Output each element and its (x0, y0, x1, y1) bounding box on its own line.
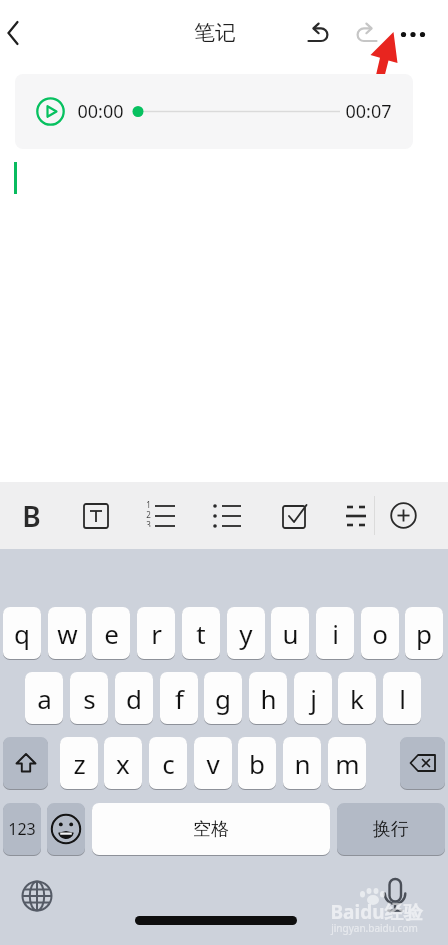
button[interactable]: 换行 (337, 803, 445, 855)
staticText: e (104, 616, 119, 651)
staticText: a (37, 681, 52, 716)
button[interactable]: z (60, 737, 98, 789)
button[interactable] (2, 18, 32, 48)
button[interactable]: m (328, 737, 366, 789)
button[interactable]: g (204, 672, 242, 724)
staticText: s (83, 681, 96, 716)
button[interactable] (212, 482, 242, 549)
button[interactable]: u (271, 607, 309, 659)
staticText: z (73, 746, 86, 781)
button[interactable] (388, 482, 418, 549)
button[interactable]: b (238, 737, 276, 789)
staticText: Baidu经验 (330, 899, 423, 925)
button[interactable]: j (294, 672, 332, 724)
button[interactable]: q (3, 607, 41, 659)
staticText: w (57, 616, 78, 651)
staticText: 1 (146, 499, 151, 510)
staticText: 00:07 (345, 99, 392, 124)
button[interactable] (306, 20, 332, 46)
button[interactable] (382, 870, 408, 912)
button[interactable]: y (227, 607, 265, 659)
staticText: k (350, 681, 364, 716)
button[interactable] (47, 803, 85, 855)
staticText: g (215, 681, 231, 716)
staticText: n (294, 746, 311, 781)
staticText: 空格 (193, 818, 229, 841)
button[interactable]: e (92, 607, 130, 659)
button[interactable]: d (115, 672, 153, 724)
staticText: l (399, 681, 406, 716)
button[interactable]: 123 (3, 803, 41, 855)
staticText: 3 (146, 519, 151, 527)
button[interactable]: c (149, 737, 187, 789)
button[interactable] (82, 482, 110, 549)
staticText: c (162, 746, 175, 781)
staticText: 123 (8, 818, 36, 840)
button[interactable]: h (249, 672, 287, 724)
staticText: r (151, 616, 162, 651)
button[interactable]: l (383, 672, 421, 724)
button[interactable]: k (338, 672, 376, 724)
staticText: m (335, 746, 360, 781)
button[interactable] (342, 482, 372, 549)
button[interactable]: n (283, 737, 321, 789)
button[interactable]: v (194, 737, 232, 789)
staticText: y (239, 616, 253, 651)
staticText: v (206, 746, 220, 781)
staticText: h (260, 681, 277, 716)
button[interactable] (400, 737, 445, 789)
button[interactable]: w (48, 607, 86, 659)
staticText: 2 (146, 509, 151, 520)
staticText: t (196, 616, 206, 651)
staticText: jingyan.baidu.com (331, 921, 418, 935)
staticText: i (332, 616, 339, 651)
button[interactable]: B (14, 482, 48, 549)
button[interactable]: s (70, 672, 108, 724)
staticText: b (249, 746, 265, 781)
button[interactable]: 00:00 (15, 74, 413, 149)
button[interactable]: 1 (146, 482, 176, 549)
button[interactable]: a (25, 672, 63, 724)
button[interactable]: f (160, 672, 198, 724)
button[interactable]: i (316, 607, 354, 659)
button[interactable] (280, 482, 310, 549)
button[interactable] (354, 20, 380, 46)
staticText: 换行 (373, 818, 409, 841)
staticText: f (175, 681, 184, 716)
staticText: 00:00 (77, 99, 124, 124)
button[interactable]: 空格 (92, 803, 330, 855)
staticText: p (416, 616, 432, 651)
staticText: o (372, 616, 388, 651)
staticText: j (310, 681, 317, 716)
staticText: u (282, 616, 299, 651)
staticText: 笔记 (194, 20, 236, 46)
button[interactable]: t (182, 607, 220, 659)
button[interactable]: r (137, 607, 175, 659)
button[interactable]: x (104, 737, 142, 789)
button[interactable] (20, 879, 54, 913)
staticText: B (22, 497, 41, 535)
staticText: x (116, 746, 130, 781)
staticText: d (126, 681, 142, 716)
button[interactable] (3, 737, 48, 789)
button[interactable] (398, 22, 428, 46)
staticText: q (14, 616, 30, 651)
button[interactable]: p (405, 607, 443, 659)
button[interactable]: o (361, 607, 399, 659)
